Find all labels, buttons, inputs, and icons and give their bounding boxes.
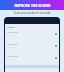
staticText: Tune your audio in seconds	[13, 11, 51, 15]
button[interactable]: Enabled	[5, 28, 59, 40]
staticText: IMPROVE THE SOUND	[14, 3, 51, 8]
button[interactable]: Enabled	[5, 40, 59, 52]
staticText: Sound	[7, 25, 15, 28]
button[interactable]: Enabled	[5, 52, 59, 64]
